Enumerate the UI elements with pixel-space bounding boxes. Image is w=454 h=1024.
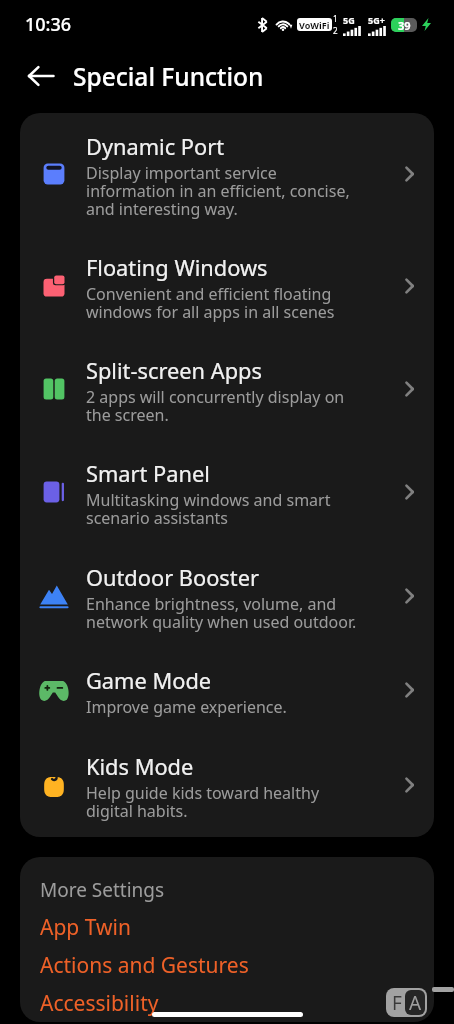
staticText: 10:36 — [25, 12, 72, 37]
staticText: Dynamic Port — [86, 132, 225, 162]
button[interactable]: Accessibility — [40, 984, 434, 1022]
staticText: Display important service information in… — [86, 162, 350, 220]
staticText: More Settings — [40, 877, 165, 903]
button[interactable]: App Twin — [40, 908, 434, 946]
staticText: A — [409, 990, 422, 1015]
button[interactable]: Accessibility shortcut — [388, 990, 425, 1015]
staticText: 39 — [398, 18, 411, 32]
staticText: Floating Windows — [86, 253, 268, 283]
staticText: Convenient and efficient floating window… — [86, 283, 335, 323]
staticText: Split-screen Apps — [86, 356, 262, 386]
staticText: Outdoor Booster — [86, 563, 259, 593]
button[interactable]: Game Mode — [20, 647, 434, 733]
button[interactable]: Dynamic Port — [20, 113, 434, 234]
button[interactable]: Split-screen Apps — [20, 337, 434, 440]
staticText: F — [392, 990, 402, 1015]
button[interactable]: Kids Mode — [20, 733, 434, 837]
button[interactable]: Floating Windows — [20, 234, 434, 337]
staticText: Game Mode — [86, 666, 212, 696]
staticText: Enhance brightness, volume, and network … — [86, 593, 357, 633]
staticText: Actions and Gestures — [40, 951, 249, 980]
staticText: 2 apps will concurrently display on the … — [86, 386, 345, 426]
button[interactable]: Outdoor Booster — [20, 544, 434, 647]
button[interactable]: Back — [22, 57, 60, 95]
staticText: 5G+ — [368, 14, 385, 26]
button[interactable]: Actions and Gestures — [40, 946, 434, 984]
staticText: 1 — [333, 13, 338, 24]
staticText: 5G — [343, 14, 355, 26]
staticText: Multitasking windows and smart scenario … — [86, 489, 331, 529]
staticText: Smart Panel — [86, 459, 210, 489]
staticText: VoWiFi — [299, 19, 330, 31]
staticText: App Twin — [40, 913, 131, 942]
staticText: Help guide kids toward healthy digital h… — [86, 782, 320, 822]
staticText: Kids Mode — [86, 752, 194, 782]
staticText: Special Function — [73, 60, 264, 93]
button[interactable]: Smart Panel — [20, 440, 434, 544]
staticText: 2 — [333, 25, 338, 36]
staticText: Accessibility — [40, 989, 159, 1018]
staticText: Improve game experience. — [86, 696, 287, 718]
